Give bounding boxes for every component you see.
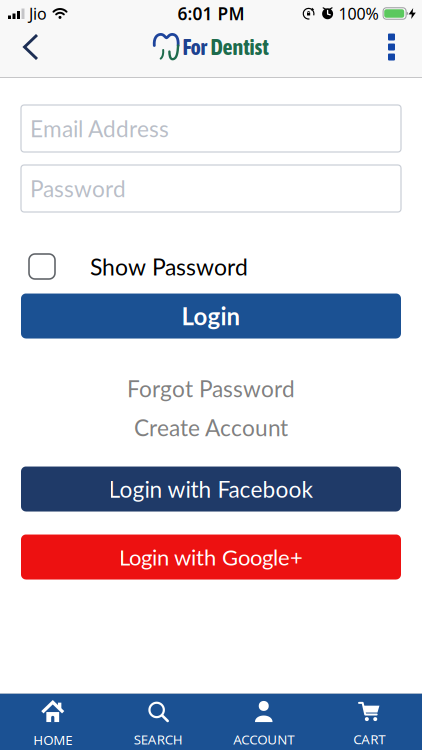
staticText: Jio <box>29 3 47 24</box>
staticText: Email Address <box>30 115 169 142</box>
button[interactable] <box>388 22 422 71</box>
button[interactable]: HOME <box>33 694 72 750</box>
staticText: SEARCH <box>134 730 183 748</box>
button[interactable]: Password <box>0 165 422 212</box>
staticText: 100% <box>339 3 379 24</box>
staticText: Create Account <box>134 414 288 441</box>
staticText: Login with Facebook <box>108 475 313 503</box>
button[interactable]: Show Password <box>0 254 422 279</box>
staticText: Login <box>181 302 240 330</box>
button[interactable]: Login <box>0 293 422 338</box>
staticText: HOME <box>33 731 72 749</box>
button[interactable]: Login with Google+ <box>0 534 422 579</box>
staticText: For <box>182 34 206 60</box>
staticText: Password <box>30 175 126 202</box>
staticText: CART <box>353 730 385 748</box>
staticText: ACCOUNT <box>233 730 294 748</box>
button[interactable]: ACCOUNT <box>233 694 294 750</box>
button[interactable] <box>0 23 38 71</box>
button[interactable]: Login with Facebook <box>0 466 422 511</box>
staticText: Dentist <box>210 34 268 60</box>
button[interactable]: Forgot Password <box>127 376 295 400</box>
button[interactable]: CART <box>353 694 385 750</box>
staticText: 6:01 PM <box>177 2 244 25</box>
button[interactable]: Email Address <box>0 105 422 152</box>
button[interactable]: SEARCH <box>134 694 183 750</box>
button[interactable]: Create Account <box>134 415 288 439</box>
staticText: Login with Google+ <box>119 544 303 570</box>
staticText: Forgot Password <box>127 375 295 402</box>
staticText: Show Password <box>90 253 248 280</box>
